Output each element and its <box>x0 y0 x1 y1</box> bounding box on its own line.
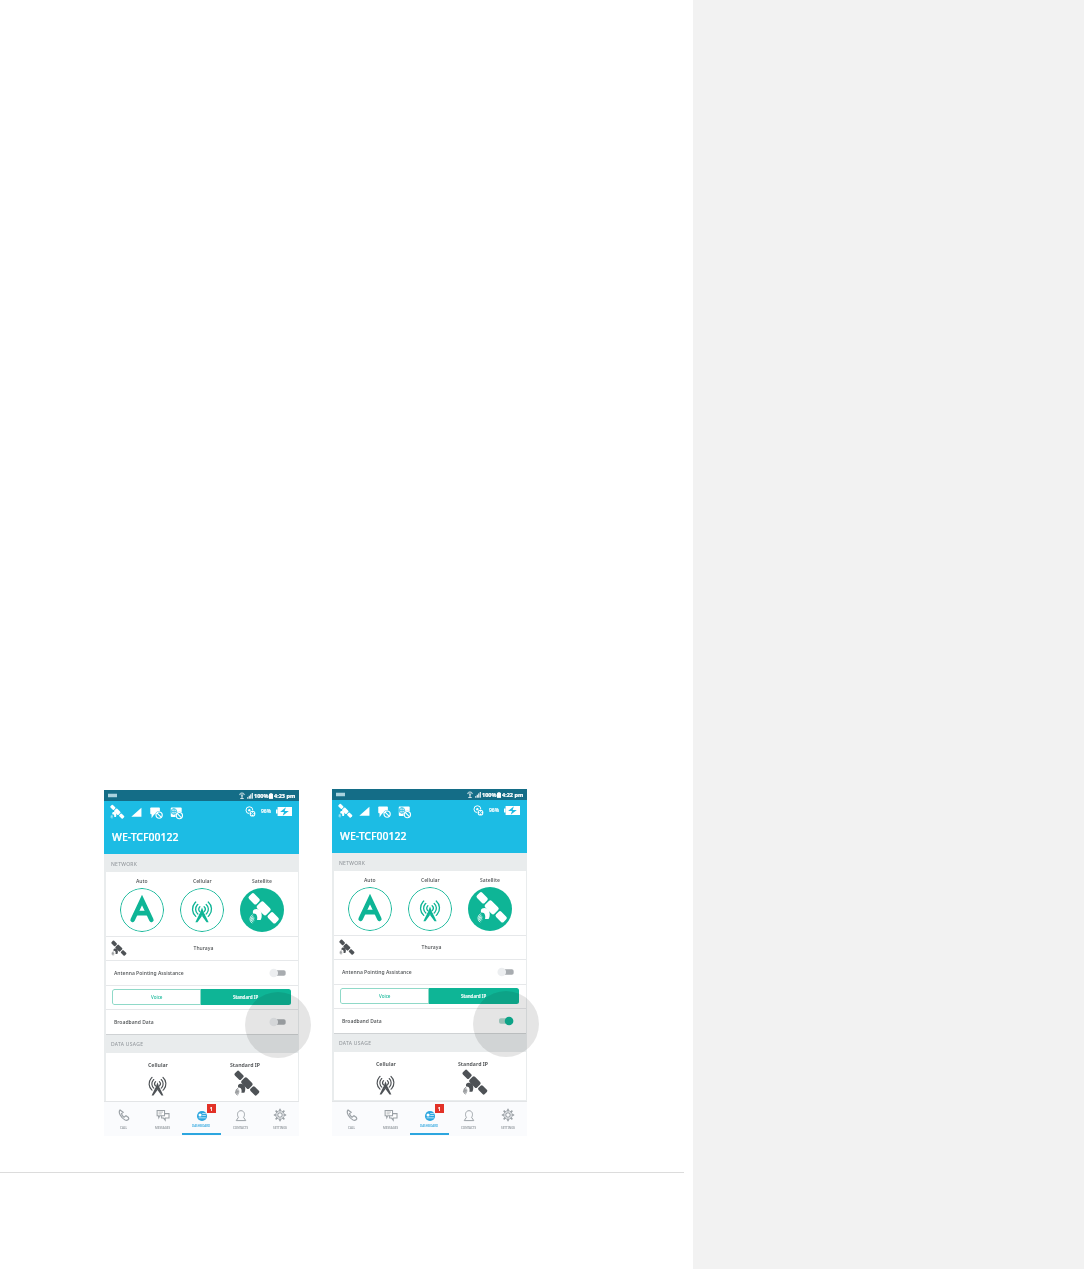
button[interactable]: Antenna Pointing Assistance <box>334 960 526 984</box>
staticText: WE-TCF00122 <box>340 829 407 843</box>
other: Messages blocked <box>150 806 163 819</box>
staticText: 4:22 pm <box>502 791 524 798</box>
button[interactable]: MESSAGES <box>143 1101 182 1136</box>
staticText: Thuraya <box>117 945 290 952</box>
button[interactable]: Broadband Data <box>334 1009 526 1033</box>
staticText: 100% <box>254 792 269 799</box>
other: Satellite status <box>338 805 351 818</box>
button[interactable]: CALL <box>332 1101 371 1136</box>
button[interactable]: Standard IP <box>201 1061 289 1096</box>
staticText: 96% <box>489 807 499 814</box>
staticText: CONTACTS <box>461 1126 477 1130</box>
staticText: MESSAGES <box>155 1126 171 1130</box>
staticText: 100% <box>482 791 497 798</box>
button[interactable]: Broadband Data <box>106 1010 298 1034</box>
staticText: Auto <box>136 878 148 885</box>
other: GPS off <box>473 805 484 816</box>
staticText: DASHBOARD <box>420 1124 439 1128</box>
staticText: 1 <box>438 1106 441 1112</box>
staticText: SETTINGS <box>273 1126 287 1130</box>
staticText: Cellular <box>148 1061 168 1068</box>
button[interactable]: Cellular <box>406 871 454 931</box>
other: Internet blocked <box>398 805 411 818</box>
other: Internet blocked <box>170 806 183 819</box>
staticText: SETTINGS <box>501 1126 515 1130</box>
staticText: WE-TCF00122 <box>112 830 179 844</box>
button[interactable]: Thuraya <box>334 936 526 959</box>
button[interactable]: Standard IP <box>201 989 291 1005</box>
staticText: Cellular <box>376 1060 396 1067</box>
staticText: Cellular <box>421 877 440 884</box>
button[interactable]: Satellite <box>466 871 514 931</box>
button[interactable]: Standard IP <box>429 1060 517 1095</box>
staticText: CALL <box>348 1126 356 1130</box>
button[interactable]: Cellular <box>342 1060 429 1095</box>
other: Battery charging <box>504 806 520 815</box>
staticText: Standard IP <box>230 1061 261 1068</box>
staticText: Auto <box>364 877 376 884</box>
button[interactable]: Thuraya <box>106 937 298 960</box>
staticText: 96% <box>261 808 271 815</box>
staticText: Thuraya <box>345 944 518 951</box>
staticText: CALL <box>120 1126 128 1130</box>
staticText: Satellite <box>480 877 500 884</box>
button[interactable]: Auto <box>346 871 394 931</box>
staticText: Standard IP <box>458 1060 489 1067</box>
staticText: Broadband Data <box>342 1018 382 1025</box>
staticText: Standard IP <box>461 993 487 999</box>
button[interactable]: DASHBOARD <box>410 1101 449 1136</box>
button[interactable]: DASHBOARD <box>182 1101 221 1136</box>
button[interactable]: Voice <box>112 989 201 1005</box>
staticText: 4:23 pm <box>274 792 296 799</box>
staticText: DATA USAGE <box>339 1040 372 1047</box>
button[interactable]: Antenna Pointing Assistance <box>106 961 298 985</box>
other: Messages blocked <box>378 805 391 818</box>
staticText: 1 <box>210 1106 213 1112</box>
other: Battery charging <box>276 807 292 816</box>
button[interactable]: MESSAGES <box>371 1101 410 1136</box>
button[interactable]: Voice <box>340 988 429 1004</box>
staticText: DASHBOARD <box>192 1124 211 1128</box>
staticText: Antenna Pointing Assistance <box>114 970 184 977</box>
other: Satellite status <box>110 806 123 819</box>
button[interactable]: CONTACTS <box>449 1101 488 1136</box>
button[interactable]: Cellular <box>114 1061 201 1096</box>
staticText: NETWORK <box>111 861 138 868</box>
other: Signal <box>130 806 143 819</box>
staticText: Standard IP <box>233 994 259 1000</box>
staticText: MESSAGES <box>383 1126 399 1130</box>
button[interactable]: SETTINGS <box>260 1101 299 1136</box>
staticText: Satellite <box>252 878 272 885</box>
staticText: Antenna Pointing Assistance <box>342 969 412 976</box>
button[interactable]: Auto <box>118 872 166 932</box>
staticText: NETWORK <box>339 860 366 867</box>
button[interactable]: Satellite <box>238 872 286 932</box>
button[interactable]: CONTACTS <box>221 1101 260 1136</box>
other: GPS off <box>245 806 256 817</box>
staticText: Cellular <box>193 878 212 885</box>
staticText: CONTACTS <box>233 1126 249 1130</box>
button[interactable]: Standard IP <box>429 988 519 1004</box>
staticText: Voice <box>379 993 391 999</box>
button[interactable]: CALL <box>104 1101 143 1136</box>
staticText: DATA USAGE <box>111 1041 144 1048</box>
button[interactable]: SETTINGS <box>488 1101 527 1136</box>
staticText: Broadband Data <box>114 1019 154 1026</box>
staticText: Voice <box>151 994 163 1000</box>
button[interactable]: Cellular <box>178 872 226 932</box>
other: Signal <box>358 805 371 818</box>
